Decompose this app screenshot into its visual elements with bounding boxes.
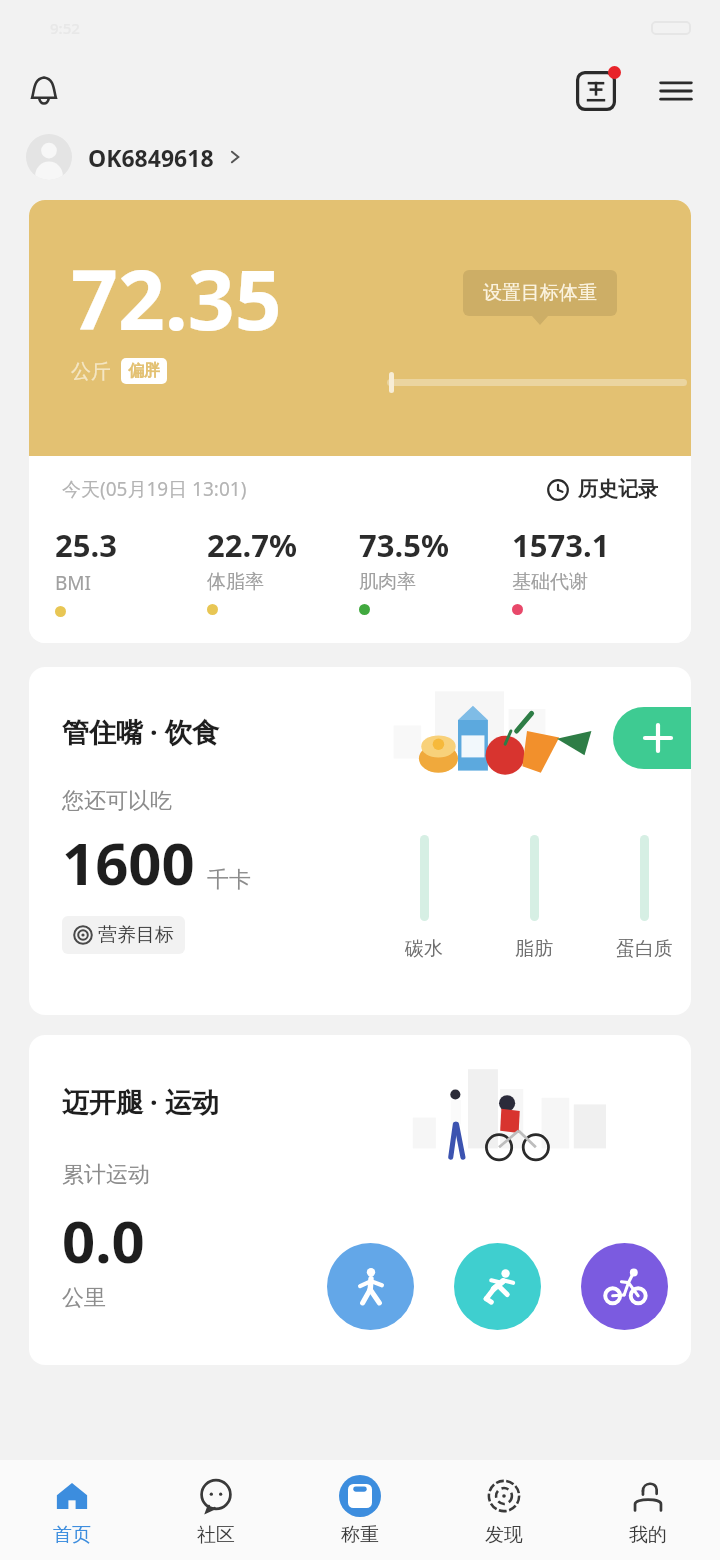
button[interactable]: 72.35: [29, 200, 691, 456]
staticText: 您还可以吃: [62, 787, 172, 815]
staticText: 1573.1: [512, 524, 610, 566]
button[interactable]: Sign in: [568, 63, 624, 119]
button[interactable]: 社区: [144, 1460, 288, 1560]
button[interactable]: 历史记录: [547, 477, 658, 502]
staticText: 25.3: [55, 524, 117, 566]
button[interactable]: Run: [454, 1243, 541, 1330]
staticText: 蛋白质: [616, 937, 673, 961]
staticText: 碳水: [405, 937, 443, 961]
staticText: 称重: [341, 1523, 379, 1547]
staticText: 偏胖: [128, 361, 160, 381]
staticText: 9:52: [50, 18, 80, 38]
staticText: 设置目标体重: [483, 281, 597, 305]
staticText: 我的: [629, 1523, 667, 1547]
staticText: 公里: [62, 1284, 106, 1312]
staticText: 今天(05月19日 13:01): [62, 476, 247, 502]
staticText: OK6849618: [88, 142, 214, 173]
staticText: 管住嘴 · 饮食: [62, 713, 219, 750]
staticText: 发现: [485, 1523, 523, 1547]
button[interactable]: 我的: [576, 1460, 720, 1560]
staticText: 迈开腿 · 运动: [62, 1083, 219, 1120]
staticText: 22.7%: [207, 524, 297, 566]
button[interactable]: 脂肪: [494, 835, 574, 961]
staticText: 肌肉率: [359, 570, 416, 594]
staticText: 社区: [197, 1523, 235, 1547]
staticText: 体脂率: [207, 570, 264, 594]
staticText: 1600: [62, 823, 195, 902]
button[interactable]: OK6849618: [26, 126, 720, 188]
button[interactable]: Menu: [650, 65, 702, 117]
button[interactable]: 称重: [288, 1460, 432, 1560]
button[interactable]: Walk: [327, 1243, 414, 1330]
button[interactable]: Add food: [613, 707, 691, 769]
button[interactable]: 73.5%: [359, 524, 512, 615]
staticText: 营养目标: [98, 923, 174, 947]
staticText: 公斤: [71, 359, 111, 384]
button[interactable]: 22.7%: [207, 524, 359, 615]
button[interactable]: 蛋白质: [604, 835, 684, 961]
button[interactable]: 发现: [432, 1460, 576, 1560]
staticText: 累计运动: [62, 1161, 150, 1189]
button[interactable]: 设置目标体重: [463, 270, 617, 316]
button[interactable]: 碳水: [384, 835, 464, 961]
button[interactable]: 营养目标: [62, 916, 185, 954]
staticText: 千卡: [207, 866, 251, 894]
button[interactable]: Cycle: [581, 1243, 668, 1330]
staticText: 脂肪: [515, 937, 553, 961]
button[interactable]: Notifications: [18, 65, 70, 117]
staticText: BMI: [55, 570, 92, 596]
staticText: 首页: [53, 1523, 91, 1547]
staticText: 73.5%: [359, 524, 449, 566]
staticText: 历史记录: [578, 477, 658, 502]
staticText: 72.35: [71, 242, 282, 354]
button[interactable]: 首页: [0, 1460, 144, 1560]
button[interactable]: 1573.1: [512, 524, 665, 615]
button[interactable]: 25.3: [55, 524, 207, 617]
staticText: 0.0: [62, 1201, 145, 1280]
staticText: 基础代谢: [512, 570, 588, 594]
